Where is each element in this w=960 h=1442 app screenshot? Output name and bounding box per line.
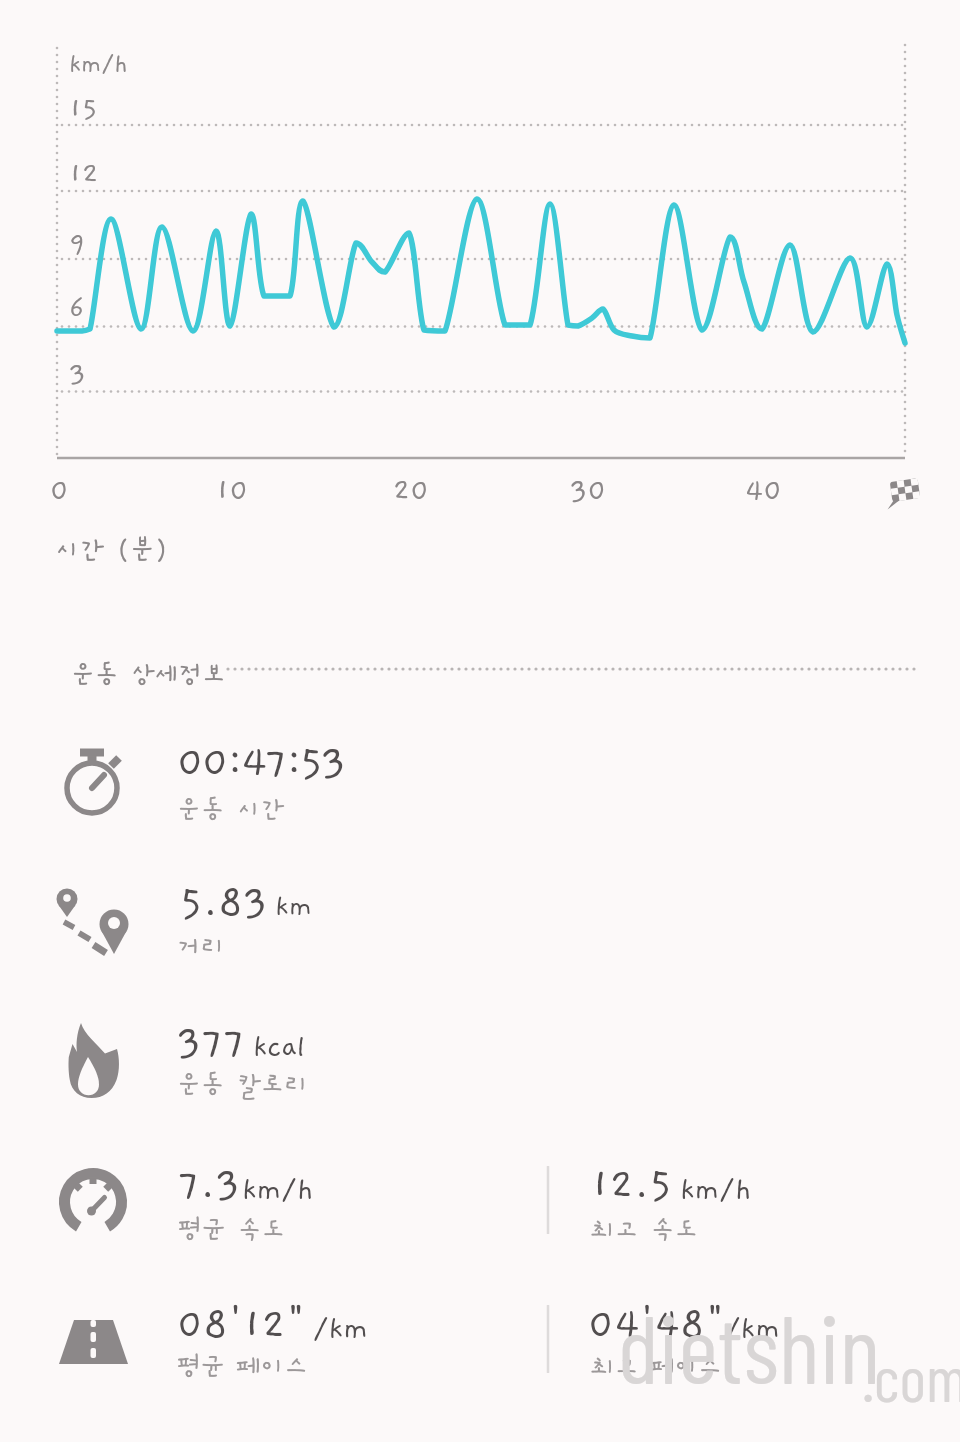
staticText: 7.3 (178, 1162, 241, 1208)
staticText: 최고 페이스 (591, 1353, 723, 1382)
staticText: dietshin (618, 1288, 881, 1403)
staticText: 10 (216, 475, 249, 508)
staticText: 40 (745, 475, 783, 508)
staticText: .com (862, 1338, 960, 1415)
staticText: 08'12" (177, 1302, 306, 1348)
staticText: 시간 (분) (55, 536, 168, 566)
staticText: km/h (680, 1173, 752, 1207)
staticText: km/h (242, 1173, 314, 1207)
staticText: 15 (69, 93, 98, 125)
staticText: 5.83 (180, 880, 268, 926)
staticText: 6 (69, 293, 85, 325)
staticText: 3 (69, 358, 86, 390)
staticText: 12.5 (591, 1162, 673, 1208)
staticText: 평균 속도 (178, 1216, 286, 1245)
staticText: 30 (570, 475, 607, 508)
staticText: km/h (69, 51, 128, 79)
staticText: km (275, 891, 313, 923)
staticText: 9 (69, 227, 86, 259)
staticText: 거리 (177, 933, 225, 962)
staticText: 00:47:53 (177, 739, 345, 786)
staticText: /km (313, 1312, 368, 1346)
staticText: 최고 속도 (591, 1216, 699, 1245)
staticText: 20 (393, 475, 430, 508)
staticText: kcal (253, 1031, 306, 1064)
staticText: /km (725, 1312, 780, 1346)
staticText: 12 (69, 158, 99, 190)
staticText: 운동 상세정보 (71, 661, 226, 690)
staticText: 0 (50, 475, 69, 508)
staticText: 평균 페이스 (177, 1353, 309, 1382)
staticText: 운동 칼로리 (177, 1071, 309, 1100)
staticText: 377 (177, 1020, 246, 1066)
staticText: 운동 시간 (177, 796, 285, 825)
staticText: 04'48" (588, 1302, 725, 1348)
